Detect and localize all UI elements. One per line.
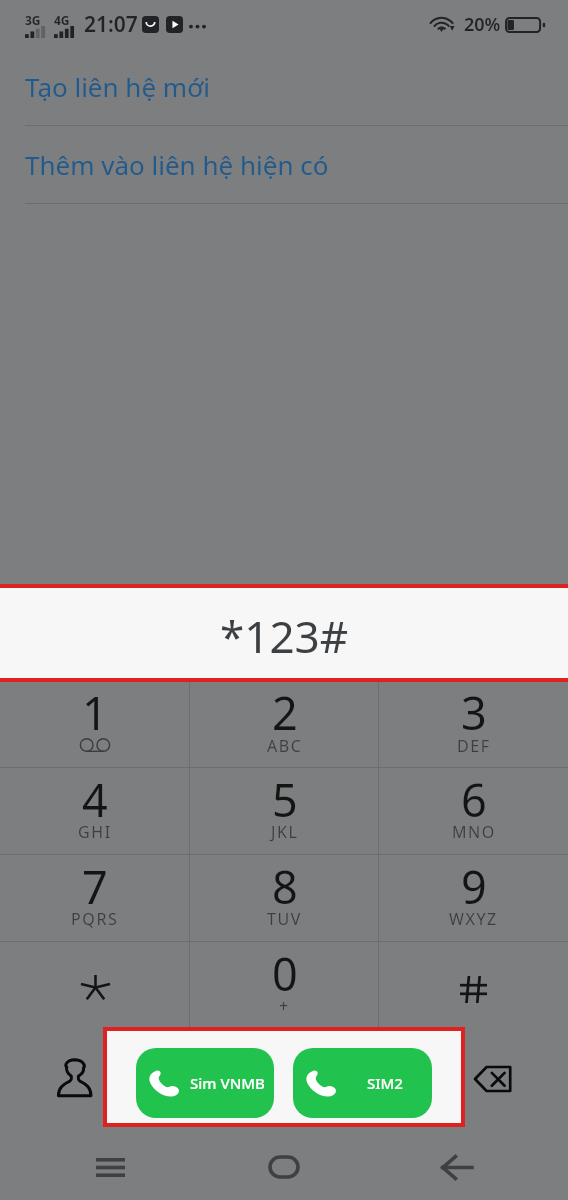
button[interactable]: Back [425,1135,489,1199]
button[interactable]: Thêm vào liên hệ hiện có [0,126,568,204]
staticText: 0 [272,943,298,1004]
button[interactable]: 7 [0,855,190,941]
button[interactable]: Tạo liên hệ mới [0,48,568,126]
button[interactable]: Backspace [473,1065,513,1093]
button[interactable]: SIM2 [293,1048,432,1118]
staticText: 2 [272,682,298,743]
button[interactable]: 1 [0,682,190,767]
staticText: 3 [461,682,487,743]
button[interactable]: Home [252,1135,316,1199]
button[interactable]: 6 [379,768,568,854]
button[interactable]: Recent apps [78,1135,142,1199]
staticText: 21:07 [84,10,138,39]
staticText: TUV [267,908,302,930]
staticText: WXYZ [449,908,498,930]
staticText: *123# [220,606,349,666]
button[interactable]: 9 [379,855,568,941]
staticText: MNO [452,821,496,843]
button[interactable]: 0 [190,942,379,1028]
staticText: PQRS [71,908,119,930]
staticText: 7 [82,856,108,917]
button[interactable] [379,942,568,1028]
staticText: SIM2 [367,1073,403,1093]
button[interactable]: 5 [190,768,379,854]
staticText: 8 [272,856,298,917]
staticText: DEF [457,735,491,757]
staticText: 6 [461,769,487,830]
staticText: 4 [82,769,108,830]
staticText: JKL [271,821,299,843]
staticText: 1 [82,682,108,743]
button[interactable] [0,942,190,1028]
staticText: 5 [272,769,298,830]
staticText: 4G [54,12,70,28]
staticText: ABC [267,735,303,757]
staticText: GHI [78,821,112,843]
button[interactable]: 4 [0,768,190,854]
staticText: Tạo liên hệ mới [25,69,210,104]
staticText: 20% [464,12,501,37]
staticText: 3G [25,12,41,28]
staticText: Thêm vào liên hệ hiện có [25,147,329,182]
staticText: 9 [461,856,487,917]
button[interactable]: 2 [190,682,379,767]
button[interactable]: 3 [379,682,568,767]
button[interactable]: Sim VNMB [136,1048,274,1118]
staticText: + [279,995,290,1017]
button[interactable]: 8 [190,855,379,941]
staticText: Sim VNMB [190,1073,265,1093]
button[interactable]: Contacts [57,1058,92,1097]
